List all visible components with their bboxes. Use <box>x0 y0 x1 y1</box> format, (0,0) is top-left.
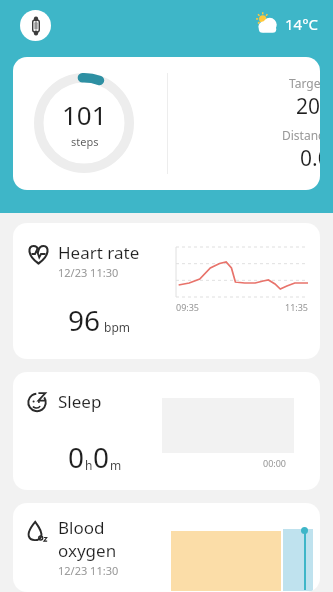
staticText: 2000 <box>296 92 320 121</box>
staticText: 00:00 <box>263 457 287 469</box>
staticText: m <box>110 457 122 473</box>
button[interactable]: 14°C <box>253 10 319 37</box>
staticText: 0 <box>93 438 110 476</box>
staticText: 0 <box>68 438 85 476</box>
button[interactable]: Heart rate <box>13 223 320 359</box>
button[interactable]: Device <box>20 10 51 41</box>
staticText: 12/23 11:30 <box>58 265 119 280</box>
staticText: 0.07 <box>300 144 320 173</box>
staticText: steps <box>71 134 99 149</box>
staticText: Distance (km) <box>282 127 320 143</box>
button[interactable]: 101 <box>13 57 320 190</box>
staticText: Sleep <box>58 390 102 413</box>
staticText: Target step <box>289 75 320 91</box>
staticText: oxygen <box>58 539 117 562</box>
button[interactable]: Sleep <box>13 372 320 490</box>
staticText: 09:35 <box>176 301 200 313</box>
staticText: Heart rate <box>58 241 140 264</box>
staticText: bpm <box>104 319 130 335</box>
button[interactable]: Blood <box>13 503 320 592</box>
staticText: 96 <box>68 301 101 339</box>
staticText: 14°C <box>285 14 319 34</box>
staticText: 101 <box>62 97 107 132</box>
staticText: h <box>85 457 93 473</box>
staticText: Blood <box>58 516 105 539</box>
staticText: 11:35 <box>285 301 309 313</box>
staticText: 12/23 11:30 <box>58 563 119 578</box>
